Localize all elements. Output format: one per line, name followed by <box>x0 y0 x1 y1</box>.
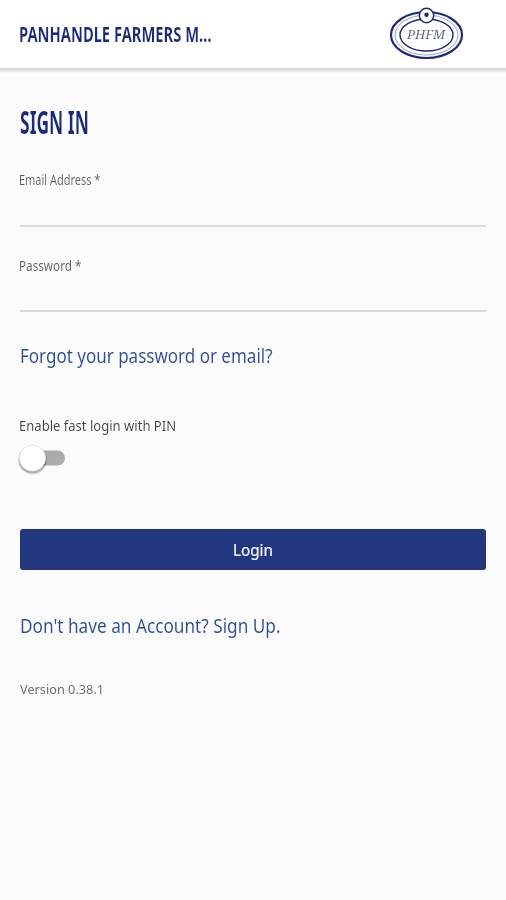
staticText: Don't have an Account? Sign Up. <box>20 612 281 639</box>
staticText: Password * <box>19 255 82 275</box>
button[interactable]: Forgot your password or email? <box>18 340 316 370</box>
staticText: SIGN IN <box>20 99 89 143</box>
button[interactable]: Login <box>20 529 486 570</box>
staticText: PANHANDLE FARMERS M… <box>19 20 212 49</box>
staticText: PHFM <box>407 25 446 43</box>
staticText: Login <box>233 539 273 561</box>
button[interactable]: Don't have an Account? Sign Up. <box>18 610 321 640</box>
staticText: Enable fast login with PIN <box>19 415 176 435</box>
staticText: Email Address * <box>19 169 101 189</box>
staticText: Forgot your password or email? <box>20 342 273 369</box>
button[interactable] <box>18 443 68 473</box>
staticText: Version 0.38.1 <box>20 680 104 698</box>
